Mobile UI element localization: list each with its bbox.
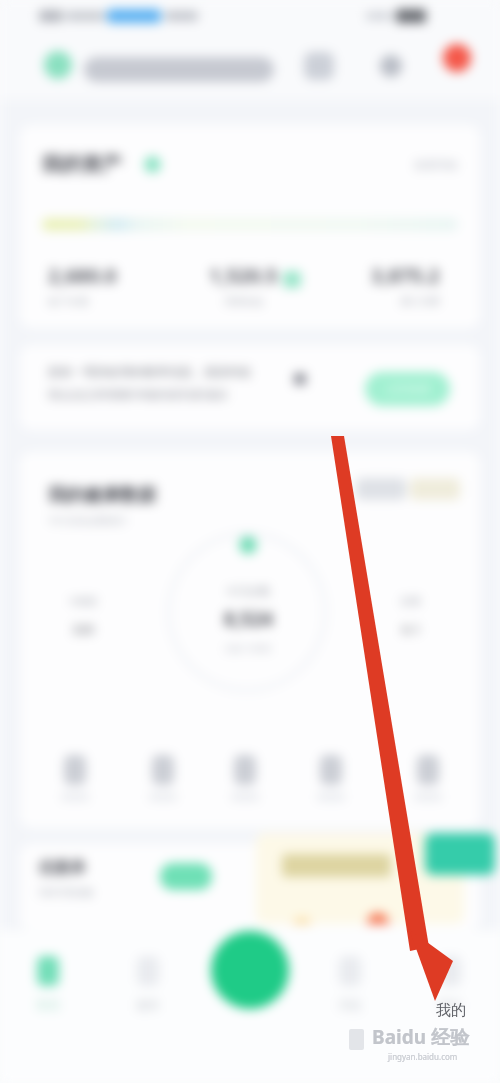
button[interactable]: 立即查看 xyxy=(365,372,450,406)
button[interactable]: 我的资产 xyxy=(20,125,480,328)
button[interactable]: 更多 xyxy=(398,755,458,801)
staticText: Baidu 经验 xyxy=(372,1024,469,1050)
button[interactable]: Pay xyxy=(211,931,289,1009)
staticText: 理点击立即查看详细内容列表项目 xyxy=(48,387,228,402)
staticText: 2,680.0 xyxy=(48,262,117,289)
button[interactable]: Use coupon xyxy=(160,863,212,890)
staticText: 我的资产 xyxy=(42,152,122,177)
button[interactable]: 收款 xyxy=(133,755,193,801)
button[interactable]: Notifications xyxy=(380,55,402,77)
staticText: 8,524 xyxy=(224,606,273,632)
staticText: 今日步数 xyxy=(226,584,270,598)
staticText: 优惠券 xyxy=(38,858,86,878)
staticText: 我的 xyxy=(436,1001,466,1020)
staticText: 我的健康数据 xyxy=(48,484,156,507)
button[interactable]: 消息 xyxy=(320,956,380,1012)
button[interactable]: 优惠券 xyxy=(20,844,480,930)
staticText: 卡路里 xyxy=(68,595,98,608)
button[interactable]: 我的健康数据 xyxy=(20,452,480,828)
button[interactable]: 您有一笔待处理的账单信息，请及时处 xyxy=(20,345,480,430)
button[interactable]: Message xyxy=(304,52,334,80)
button[interactable]: 转账 xyxy=(45,755,105,801)
button[interactable]: Profile xyxy=(443,44,471,72)
staticText: 320 xyxy=(72,620,95,638)
button[interactable]: 缴费 xyxy=(215,755,275,801)
button[interactable]: 首页 xyxy=(18,956,78,1012)
button[interactable]: 信用 xyxy=(301,755,361,801)
staticText: 1,520.5 xyxy=(209,262,278,289)
button[interactable]: 我的 xyxy=(420,956,480,1012)
button[interactable]: Scan xyxy=(44,51,72,79)
button[interactable] xyxy=(84,57,274,82)
button[interactable]: Sync xyxy=(356,478,406,500)
staticText: jingyan.baidu.com xyxy=(388,1051,458,1062)
button[interactable]: Promotion xyxy=(256,833,464,924)
staticText: 6.1 xyxy=(402,620,421,638)
staticText: 您有一笔待处理的账单信息，请及时处 xyxy=(48,364,252,379)
staticText: 3,875.2 xyxy=(371,262,440,289)
button[interactable]: 服务 xyxy=(118,956,178,1012)
staticText: 我的 xyxy=(438,997,462,1012)
